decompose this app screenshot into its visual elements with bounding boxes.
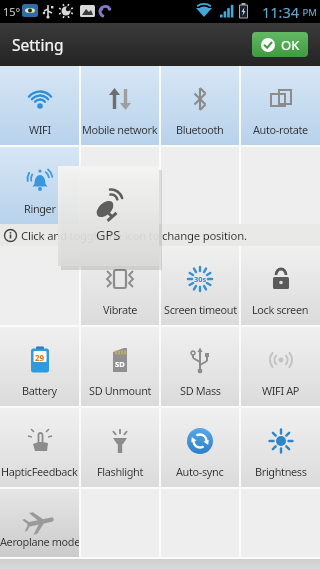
staticText: PM (300, 6, 317, 19)
button[interactable]: 29 (0, 327, 79, 406)
button[interactable]: SD Mass (161, 327, 239, 406)
button[interactable]: SD (81, 327, 159, 406)
staticText: 30s (194, 274, 207, 284)
staticText: WIFI AP (262, 383, 300, 398)
staticText: GPS (96, 226, 121, 244)
staticText: Mobile network (82, 122, 158, 137)
staticText: Bluetooth (176, 122, 224, 137)
staticText: 11:34 (262, 2, 300, 22)
staticText: 29 (35, 352, 45, 363)
staticText: SD (115, 359, 125, 369)
button[interactable]: WIFI (0, 66, 79, 145)
button[interactable]: 30s (161, 246, 239, 325)
button[interactable] (0, 246, 79, 325)
staticText: Auto-sync (176, 464, 224, 479)
staticText: Setting (12, 34, 64, 55)
staticText: OK (281, 36, 300, 54)
staticText: Vibrate (103, 302, 138, 317)
button[interactable]: Brightness (241, 408, 320, 487)
button[interactable]: Ringer (0, 147, 79, 224)
button[interactable]: GPS (58, 166, 159, 266)
staticText: Flashlight (97, 464, 143, 479)
staticText: Click and toggle the icon to change posi… (21, 228, 247, 243)
staticText: WIFI (29, 122, 51, 137)
staticText: SD Unmount (89, 383, 152, 398)
button[interactable]: WIFI AP (241, 327, 320, 406)
button[interactable]: Flashlight (81, 408, 159, 487)
button[interactable]: Vibrate (81, 246, 159, 325)
staticText: Aeroplane mode (0, 534, 79, 549)
button[interactable]: Lock screen (241, 246, 320, 325)
button[interactable]: OK (252, 32, 308, 57)
staticText: HapticFeedback (1, 464, 78, 479)
staticText: 15° (3, 4, 21, 19)
button[interactable] (81, 147, 159, 224)
button[interactable]: Aeroplane mode (0, 489, 79, 557)
button[interactable]: Bluetooth (161, 66, 239, 145)
button[interactable]: Auto-rotate (241, 66, 320, 145)
button[interactable]: Auto-sync (161, 408, 239, 487)
button[interactable]: Mobile network (81, 66, 159, 145)
staticText: Screen timeout (164, 302, 237, 317)
button[interactable]: HapticFeedback (0, 408, 79, 487)
staticText: Auto-rotate (253, 122, 308, 137)
staticText: Brightness (255, 464, 307, 479)
staticText: SD Mass (180, 383, 221, 398)
staticText: Battery (22, 383, 57, 398)
staticText: Lock screen (252, 302, 309, 317)
staticText: Ringer (24, 201, 56, 216)
